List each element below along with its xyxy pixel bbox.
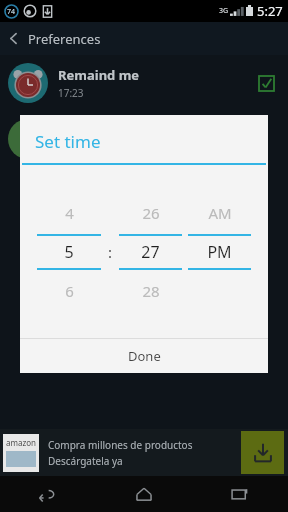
staticText: amazon	[6, 437, 36, 448]
staticText: 17:23	[58, 86, 84, 100]
button[interactable]: Home	[96, 476, 192, 512]
staticText: Remaind me	[58, 66, 140, 84]
staticText: Set time	[35, 130, 101, 153]
button[interactable]: Download	[241, 431, 284, 474]
button[interactable]: Preferences	[0, 22, 288, 55]
button[interactable]: 26	[116, 171, 185, 332]
staticText: 3G	[219, 6, 229, 16]
staticText: 4	[65, 203, 74, 223]
button[interactable]: Toggle reminder	[252, 69, 280, 97]
staticText: Compra millones de productos	[48, 438, 193, 452]
button[interactable]: Remaind me	[0, 59, 288, 107]
staticText: 6	[65, 281, 74, 301]
staticText: Done	[128, 347, 161, 365]
staticText: 27	[141, 241, 160, 263]
button[interactable]: AM	[185, 171, 254, 332]
staticText: Descárgatela ya	[48, 454, 123, 468]
staticText: AM	[208, 203, 232, 223]
button[interactable]: Recents	[192, 476, 288, 512]
staticText: 74	[7, 7, 16, 17]
staticText: 5	[64, 241, 74, 263]
staticText: 5:27	[257, 2, 283, 20]
staticText: 26	[142, 203, 160, 223]
staticText: 28	[142, 281, 160, 301]
staticText: :	[108, 242, 113, 262]
button[interactable]: Back	[0, 476, 96, 512]
button[interactable]: 4	[34, 171, 104, 332]
button[interactable]: Done	[20, 339, 268, 373]
staticText: PM	[207, 241, 232, 263]
staticText: Preferences	[28, 30, 101, 48]
button[interactable]: amazon	[0, 429, 288, 476]
